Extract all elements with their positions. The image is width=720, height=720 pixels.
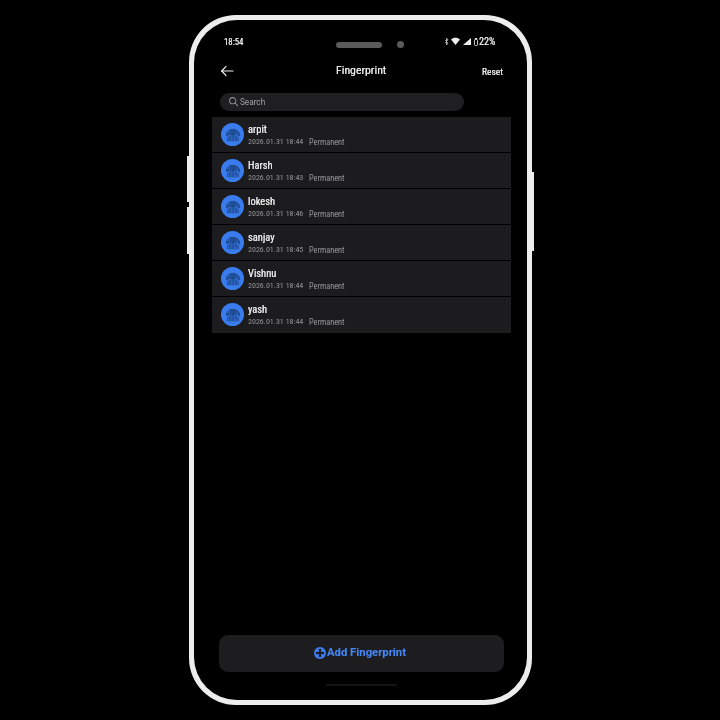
staticText: 2026.01.31 18:46 <box>248 209 304 218</box>
staticText: 2026.01.31 18:44 <box>248 281 304 290</box>
staticText: 2026.01.31 18:44 <box>248 317 304 326</box>
staticText: 18:54 <box>224 37 244 47</box>
staticText: Search <box>240 97 266 107</box>
staticText: Harsh <box>248 159 273 171</box>
staticText: Permanent <box>309 173 345 183</box>
button[interactable]: Search <box>220 93 464 111</box>
button[interactable]: sanjay <box>212 225 511 261</box>
staticText: Permanent <box>309 137 345 147</box>
button[interactable]: arpit <box>212 117 511 153</box>
button[interactable]: Reset <box>482 66 504 77</box>
button[interactable]: Harsh <box>212 153 511 189</box>
staticText: lokesh <box>248 195 276 207</box>
staticText: 2026.01.31 18:43 <box>248 173 304 182</box>
staticText: 22% <box>479 36 496 45</box>
staticText: 2026.01.31 18:45 <box>248 245 304 254</box>
button[interactable]: Add Fingerprint <box>219 635 504 672</box>
button[interactable]: yash <box>212 297 511 333</box>
staticText: Permanent <box>309 209 345 219</box>
staticText: Permanent <box>309 245 345 255</box>
staticText: Permanent <box>309 281 345 291</box>
staticText: Add Fingerprint <box>327 646 406 659</box>
staticText: Fingerprint <box>336 63 387 77</box>
staticText: arpit <box>248 123 267 135</box>
staticText: Vishnu <box>248 267 277 279</box>
button[interactable]: Vishnu <box>212 261 511 297</box>
staticText: Reset <box>482 66 504 77</box>
staticText: sanjay <box>248 231 275 243</box>
button[interactable]: lokesh <box>212 189 511 225</box>
button[interactable]: Back <box>215 59 239 83</box>
staticText: Permanent <box>309 317 345 327</box>
staticText: yash <box>248 303 268 315</box>
staticText: 2026.01.31 18:44 <box>248 137 304 146</box>
